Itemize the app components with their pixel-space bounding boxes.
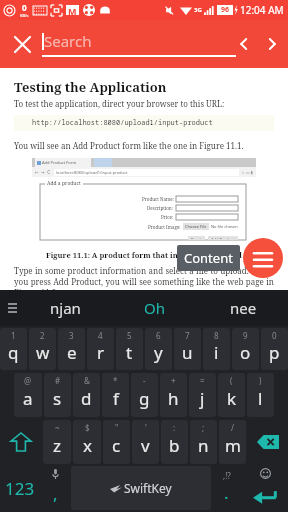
staticText: ' — [145, 422, 147, 433]
button[interactable]: nee — [199, 290, 288, 326]
button[interactable]: = — [189, 373, 216, 417]
button[interactable]: & — [73, 373, 100, 417]
staticText: * — [113, 375, 118, 386]
staticText: = — [200, 375, 205, 386]
button[interactable]: 9 — [232, 328, 259, 370]
staticText: Product Name: — [142, 196, 174, 202]
button[interactable]: $ — [73, 420, 101, 464]
staticText: o — [240, 341, 251, 364]
button[interactable]: 123 — [0, 466, 40, 510]
staticText: c — [112, 434, 121, 457]
button[interactable]: + — [160, 373, 187, 417]
staticText: Choose File — [185, 224, 207, 229]
staticText: 8 — [214, 330, 219, 341]
button[interactable]: / — [219, 420, 246, 464]
staticText: Add a product — [47, 180, 81, 187]
button[interactable]: @ — [14, 373, 42, 417]
button[interactable]: ~ — [43, 420, 71, 464]
button[interactable]: Content — [177, 245, 240, 271]
button[interactable]: # — [44, 373, 71, 417]
staticText: 5 — [127, 330, 132, 341]
staticText: 9 — [243, 330, 248, 341]
staticText: d — [81, 387, 92, 410]
button[interactable]: : — [161, 420, 188, 464]
button[interactable]: njan — [20, 290, 110, 326]
staticText: 6 — [156, 330, 161, 341]
button[interactable]: Period and punctuation — [213, 466, 240, 510]
button[interactable]: Search — [42, 31, 236, 57]
staticText: 2 — [40, 330, 45, 341]
button[interactable]: 2 — [29, 328, 56, 370]
staticText: @ — [24, 375, 32, 386]
button[interactable]: ) — [247, 373, 274, 417]
button[interactable]: Close search — [7, 29, 37, 59]
button[interactable]: Shift — [0, 420, 41, 464]
staticText: / — [231, 422, 234, 433]
staticText: Type in some product information and sel… — [14, 265, 274, 290]
staticText: x — [83, 434, 92, 457]
button[interactable]: Oh — [110, 290, 199, 326]
staticText: p — [269, 341, 280, 364]
staticText: 3 — [69, 330, 74, 341]
staticText: " — [115, 422, 119, 433]
button[interactable]: Backspace — [248, 420, 288, 464]
staticText: l — [258, 387, 263, 410]
staticText: ) — [259, 375, 262, 386]
staticText: ,!? — [223, 470, 231, 481]
button[interactable]: ; — [190, 420, 217, 464]
button[interactable]: 8 — [203, 328, 230, 370]
staticText: 0 — [272, 330, 277, 341]
staticText: u — [182, 341, 193, 364]
button[interactable]: 6 — [145, 328, 172, 370]
button[interactable]: ' — [132, 420, 159, 464]
button[interactable]: ( — [218, 373, 245, 417]
button[interactable]: " — [103, 420, 130, 464]
staticText: Content — [184, 249, 233, 267]
button[interactable]: 5 — [116, 328, 143, 370]
button[interactable]: 4 — [87, 328, 114, 370]
button[interactable]: 3 — [58, 328, 85, 370]
staticText: Add Product Form — [42, 160, 77, 165]
button[interactable]: - — [131, 373, 158, 417]
staticText: j — [200, 387, 205, 410]
staticText: Reset — [191, 237, 202, 239]
button[interactable]: 1 — [0, 328, 27, 370]
staticText: $ — [85, 422, 90, 433]
staticText: m — [225, 434, 241, 457]
staticText: i — [214, 341, 219, 364]
staticText: 0 — [22, 2, 27, 13]
staticText: r — [97, 341, 105, 364]
button[interactable]: Comma and voice input — [42, 466, 69, 510]
button[interactable]: Keyboard menu — [1, 297, 23, 319]
staticText: nee — [230, 298, 257, 318]
staticText: h — [168, 387, 179, 410]
staticText: 3G — [194, 6, 202, 14]
button[interactable]: Next result — [261, 33, 283, 55]
staticText: b — [169, 434, 180, 457]
staticText: Testing the Application — [14, 78, 167, 96]
staticText: 7 — [185, 330, 190, 341]
button[interactable]: Previous result — [233, 33, 255, 55]
staticText: k — [227, 387, 237, 410]
button[interactable]: * — [102, 373, 129, 417]
staticText: ( — [230, 375, 233, 386]
button[interactable]: Space — [71, 466, 211, 510]
staticText: & — [84, 375, 90, 386]
staticText: z — [53, 434, 61, 457]
staticText: njan — [50, 298, 81, 318]
staticText: M — [68, 5, 77, 15]
button[interactable]: 7 — [174, 328, 201, 370]
staticText: q — [8, 341, 19, 364]
staticText: Figure 11.1: A product form that include… — [14, 250, 274, 260]
staticText: , — [53, 482, 58, 505]
staticText: KB/s — [20, 13, 29, 18]
staticText: ← → C — [35, 169, 51, 175]
button[interactable]: Content menu — [243, 238, 283, 278]
staticText: e — [67, 341, 77, 364]
staticText: 12:04 AM — [240, 3, 284, 17]
staticText: w — [36, 341, 50, 364]
button[interactable]: 0 — [261, 328, 288, 370]
staticText: To test the application, direct your bro… — [14, 98, 225, 109]
staticText: http://localhost:8080/upload1/input-prod… — [32, 118, 213, 128]
button[interactable]: Enter — [242, 466, 288, 510]
